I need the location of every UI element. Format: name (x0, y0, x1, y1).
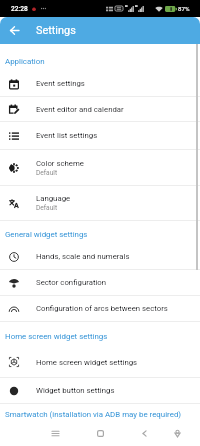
button[interactable]: Back (6, 22, 23, 39)
staticText: Sector configuration (36, 278, 107, 287)
button[interactable]: Color scheme (0, 150, 200, 186)
staticText: Settings (36, 24, 76, 37)
button[interactable]: Back (135, 423, 153, 443)
staticText: Event editor and calendar (36, 105, 124, 114)
button[interactable]: Menu (46, 423, 64, 443)
staticText: Event list settings (36, 131, 98, 140)
button[interactable]: Download (168, 423, 186, 443)
staticText: Event settings (36, 79, 85, 88)
button[interactable]: Language (0, 186, 200, 221)
staticText: Home screen widget settings (5, 332, 108, 341)
staticText: 22:28 (11, 5, 28, 13)
staticText: Language (36, 194, 71, 203)
staticText: Default (36, 204, 58, 212)
button[interactable]: Event editor and calendar (0, 97, 200, 122)
button[interactable]: Home screen widget settings (0, 347, 200, 378)
staticText: General widget settings (5, 230, 88, 239)
staticText: Smartwatch (installation via ADB may be … (5, 410, 182, 419)
button[interactable]: Home (91, 423, 109, 443)
staticText: Hands, scale and numerals (36, 252, 130, 261)
staticText: Color scheme (36, 159, 84, 168)
staticText: Default (36, 169, 58, 177)
staticText: Home screen widget settings (36, 358, 138, 367)
button[interactable]: Event list settings (0, 122, 200, 150)
button[interactable]: Widget button settings (0, 378, 200, 404)
staticText: 87% (178, 5, 190, 12)
button[interactable]: Sector configuration (0, 270, 200, 296)
staticText: Widget button settings (36, 386, 115, 395)
staticText: Configuration of arcs between sectors (36, 304, 168, 313)
button[interactable]: Event settings (0, 71, 200, 97)
button[interactable]: Hands, scale and numerals (0, 244, 200, 270)
button[interactable]: Configuration of arcs between sectors (0, 296, 200, 322)
staticText: Application (5, 57, 45, 66)
